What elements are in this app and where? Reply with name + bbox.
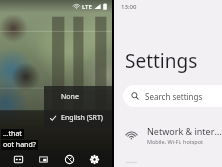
staticText: English (SRT) bbox=[61, 113, 103, 123]
staticText: 13:00 bbox=[121, 3, 137, 11]
button[interactable]: Network & internet bbox=[114, 121, 222, 149]
button[interactable]: Search settings bbox=[123, 85, 222, 107]
staticText: Search settings bbox=[145, 91, 203, 102]
staticText: Network & internet bbox=[147, 125, 222, 137]
button[interactable]: Playback speed bbox=[61, 151, 77, 167]
button[interactable]: Picture in picture bbox=[35, 151, 51, 167]
button[interactable]: None bbox=[44, 86, 112, 107]
button[interactable]: English (SRT) bbox=[44, 107, 112, 128]
staticText: Settings bbox=[125, 48, 198, 74]
staticText: …that bbox=[3, 129, 22, 139]
staticText: LTE bbox=[82, 3, 92, 11]
staticText: Mobile, Wi-Fi, hotspot bbox=[147, 138, 204, 145]
staticText: None bbox=[61, 92, 79, 102]
button[interactable]: Settings bbox=[86, 151, 102, 167]
staticText: oot hand? bbox=[3, 140, 36, 150]
button[interactable]: Closed captions bbox=[10, 151, 26, 167]
